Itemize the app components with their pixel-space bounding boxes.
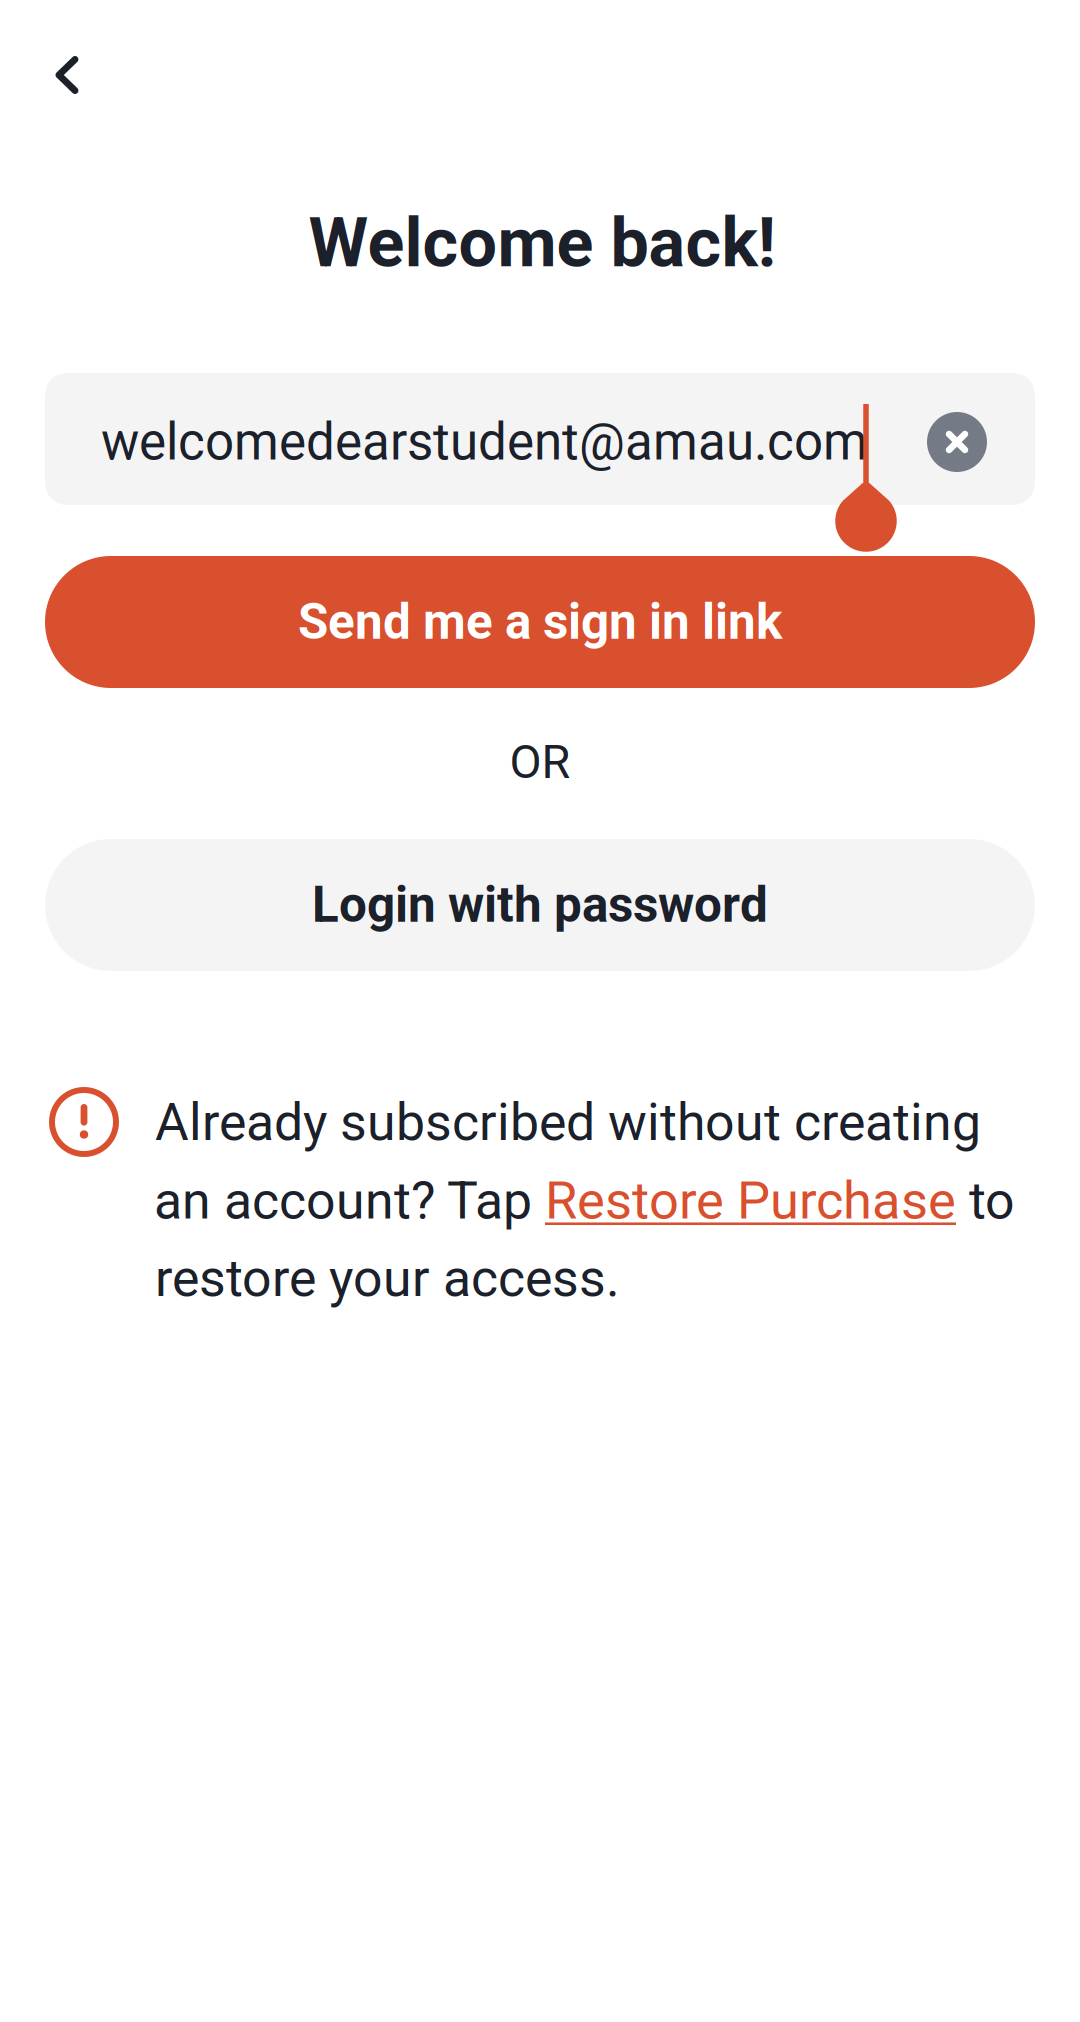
button[interactable]: Email address [45, 373, 1035, 505]
staticText: to [956, 1170, 1015, 1231]
staticText: Send me a sign in link [298, 593, 782, 651]
staticText: Welcome back! [308, 203, 775, 283]
staticText: welcomedearstudent@amau.com [101, 412, 868, 472]
staticText: OR [509, 735, 570, 789]
staticText: Already subscribed without creating [155, 1092, 981, 1153]
button[interactable]: Restore Purchase [545, 1170, 956, 1231]
button[interactable]: Back [19, 27, 115, 123]
staticText: Login with password [312, 876, 768, 934]
button[interactable]: Login with password [45, 839, 1035, 971]
button[interactable]: Clear text [912, 397, 1002, 487]
staticText: an account? Tap [154, 1170, 545, 1231]
button[interactable]: Send me a sign in link [45, 556, 1035, 688]
staticText: Restore Purchase [545, 1170, 956, 1231]
staticText: restore your access. [155, 1248, 620, 1309]
